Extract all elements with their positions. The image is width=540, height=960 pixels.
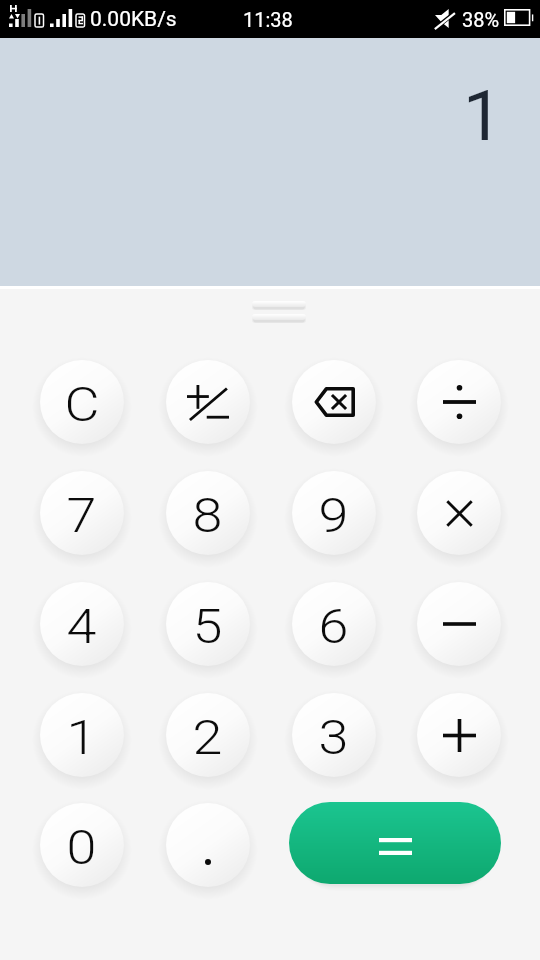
staticText: 0.00KB/s: [90, 7, 177, 32]
button[interactable]: Divide: [417, 360, 501, 444]
button[interactable]: 5: [166, 582, 250, 666]
staticText: 8: [193, 487, 223, 544]
button[interactable]: 1: [40, 693, 124, 777]
staticText: 0: [67, 819, 97, 876]
button[interactable]: Multiply: [417, 471, 501, 555]
button[interactable]: Plus minus, toggle sign: [166, 360, 250, 444]
button[interactable]: 2: [166, 693, 250, 777]
staticText: 1: [463, 75, 503, 157]
staticText: 3: [319, 709, 349, 766]
button[interactable]: 6: [292, 582, 376, 666]
staticText: 6: [319, 598, 349, 655]
staticText: 38%: [462, 8, 500, 31]
staticText: 7: [67, 487, 97, 544]
staticText: 11:38: [243, 8, 293, 31]
staticText: 1: [67, 709, 97, 766]
button[interactable]: 9: [292, 471, 376, 555]
button[interactable]: Decimal point: [166, 803, 250, 887]
staticText: 4: [67, 598, 97, 655]
button[interactable]: Equals: [289, 802, 501, 884]
button[interactable]: Minus: [417, 582, 501, 666]
button[interactable]: 4: [40, 582, 124, 666]
staticText: 5: [193, 598, 223, 655]
staticText: 9: [319, 487, 349, 544]
staticText: 2: [193, 709, 223, 766]
button[interactable]: 3: [292, 693, 376, 777]
button[interactable]: 0: [40, 803, 124, 887]
button[interactable]: 7: [40, 471, 124, 555]
button[interactable]: Plus: [417, 693, 501, 777]
button[interactable]: C: [40, 360, 124, 444]
button[interactable]: 8: [166, 471, 250, 555]
button[interactable]: Delete: [292, 360, 376, 444]
staticText: C: [64, 376, 100, 433]
